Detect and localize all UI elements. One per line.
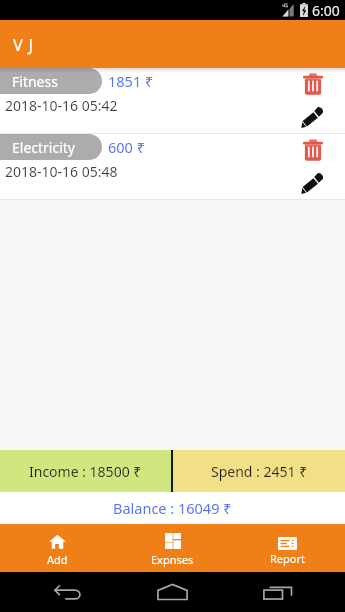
button[interactable]: Recents [263, 584, 293, 600]
staticText: Add [47, 552, 68, 567]
button[interactable]: Fitness [0, 68, 345, 134]
button[interactable]: Electricity [0, 134, 345, 200]
button[interactable]: Report [230, 524, 345, 572]
button[interactable]: Back [54, 584, 82, 600]
button[interactable]: Edit [302, 107, 323, 128]
staticText: Expnses [151, 552, 194, 567]
staticText: 6:00 [312, 1, 340, 20]
button[interactable]: Delete [303, 73, 323, 95]
staticText: Report [270, 551, 305, 566]
button[interactable]: Expnses [115, 524, 230, 572]
staticText: Fitness [12, 72, 58, 91]
button[interactable]: Add [0, 524, 115, 572]
button[interactable]: Delete [303, 139, 323, 161]
button[interactable]: Income : 18500 ₹ [0, 450, 171, 492]
button[interactable]: Spend : 2451 ₹ [173, 450, 345, 492]
staticText: Electricity [12, 138, 75, 157]
staticText: 2018-10-16 05:42 [5, 96, 118, 115]
button[interactable]: Home [157, 584, 188, 600]
staticText: 2018-10-16 05:48 [5, 162, 118, 181]
staticText: Income : 18500 ₹ [29, 462, 142, 481]
staticText: 1851 ₹ [108, 71, 154, 91]
staticText: Spend : 2451 ₹ [211, 462, 308, 481]
staticText: 600 ₹ [108, 137, 145, 157]
button[interactable]: Edit [302, 173, 323, 194]
staticText: Balance : 16049 ₹ [113, 498, 232, 518]
staticText: VJ [13, 33, 39, 55]
